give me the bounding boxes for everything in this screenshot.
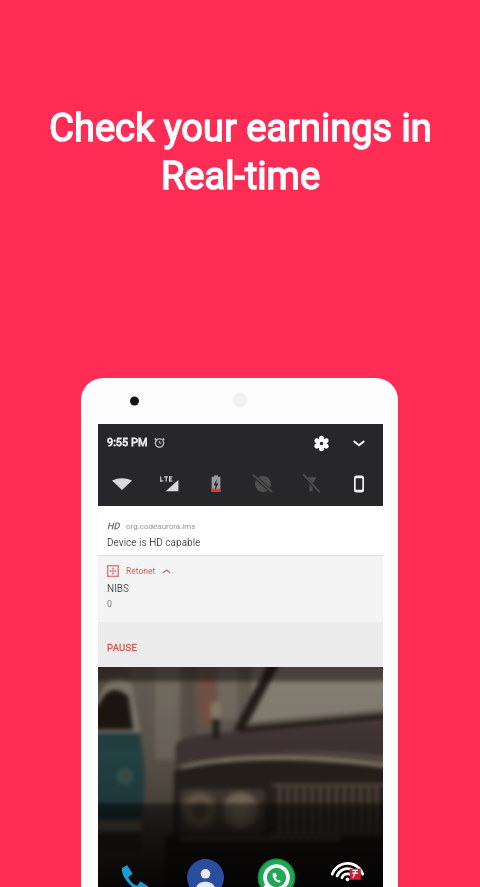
button[interactable]: HD xyxy=(98,506,383,555)
staticText: 0 xyxy=(107,599,113,610)
button[interactable]: Mobile data xyxy=(145,461,192,506)
button[interactable]: Contacts xyxy=(170,855,241,887)
staticText: Device is HD capable xyxy=(107,537,201,549)
staticText: 9:55 PM xyxy=(107,436,148,449)
button[interactable]: Phone xyxy=(98,855,170,887)
staticText: Retonet xyxy=(126,566,156,576)
button[interactable]: Wi-Fi xyxy=(98,461,145,506)
button[interactable]: PAUSE xyxy=(105,639,140,656)
button[interactable]: Settings xyxy=(310,432,332,454)
staticText: org.codeaurora.ims xyxy=(126,522,196,531)
button[interactable]: Auto rotate xyxy=(335,461,383,506)
button[interactable]: Battery xyxy=(192,461,239,506)
button[interactable]: Retonet xyxy=(312,855,383,887)
staticText: Check your earnings in Real-time xyxy=(49,106,432,198)
button[interactable]: Flashlight xyxy=(287,461,335,506)
button[interactable]: Expand quick settings xyxy=(348,432,370,454)
button[interactable]: Do not disturb xyxy=(239,461,287,506)
staticText: PAUSE xyxy=(107,642,138,653)
button[interactable]: WhatsApp xyxy=(241,855,312,887)
button[interactable]: Retonet xyxy=(98,556,383,622)
staticText: NIBS xyxy=(107,583,130,595)
staticText: HD xyxy=(107,521,120,532)
